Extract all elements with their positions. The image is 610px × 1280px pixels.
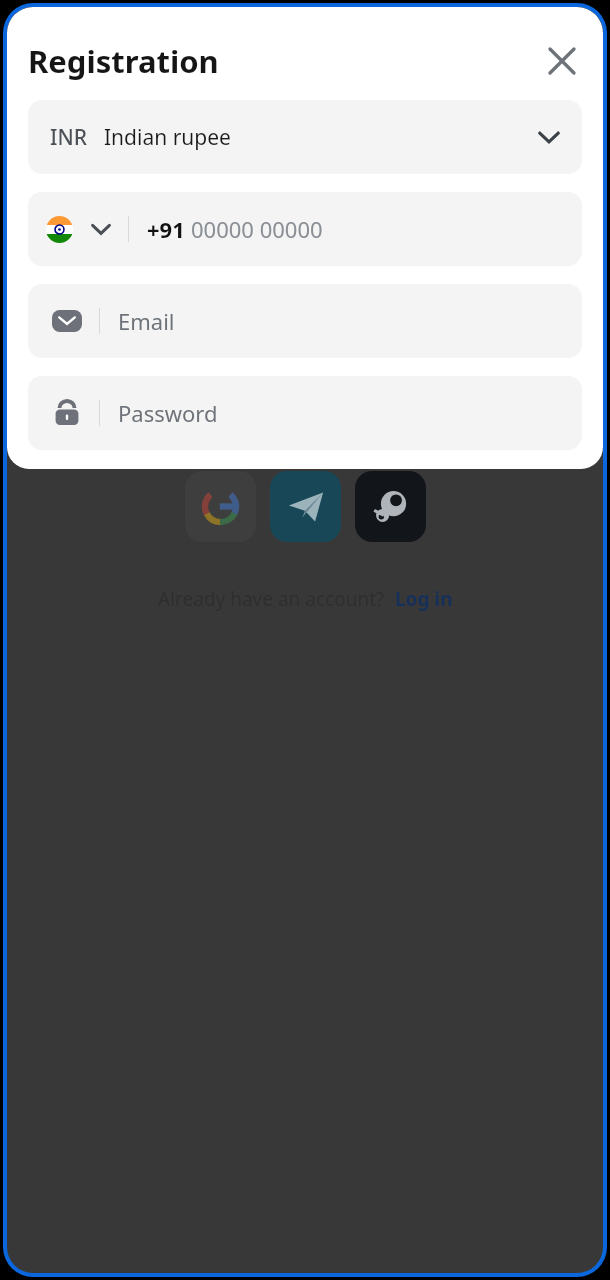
button[interactable]: Email (28, 284, 582, 358)
button[interactable]: +91 (28, 192, 582, 266)
button[interactable]: Register (28, 329, 582, 401)
button[interactable]: Add promo code (28, 219, 199, 248)
staticText: the user agreement (317, 278, 479, 301)
staticText: Email (118, 306, 175, 336)
button[interactable]: Sign in (185, 471, 256, 542)
staticText: +91 (147, 214, 191, 244)
staticText: or (28, 423, 582, 449)
button[interactable]: Sign in (355, 471, 426, 542)
staticText: At least 8 characters (28, 170, 190, 193)
button[interactable]: INR (28, 100, 582, 174)
staticText: By clicking "Register", I accept (72, 278, 317, 301)
button[interactable]: Close (542, 41, 582, 81)
staticText: Password (118, 398, 218, 428)
staticText: Registration (28, 40, 219, 82)
staticText: Already have an account? (158, 586, 385, 612)
staticText: 00000 00000 (191, 214, 323, 244)
button[interactable]: Password (28, 376, 582, 450)
staticText: Indian rupee (104, 123, 231, 152)
staticText: INR (50, 123, 88, 152)
button[interactable]: Sign in (270, 471, 341, 542)
staticText: Add promo code (28, 219, 199, 248)
button[interactable]: Log in (395, 586, 453, 612)
staticText: Log in (395, 586, 453, 612)
staticText: Register (264, 351, 346, 380)
button[interactable]: By clicking "Register", I accept (28, 274, 479, 305)
